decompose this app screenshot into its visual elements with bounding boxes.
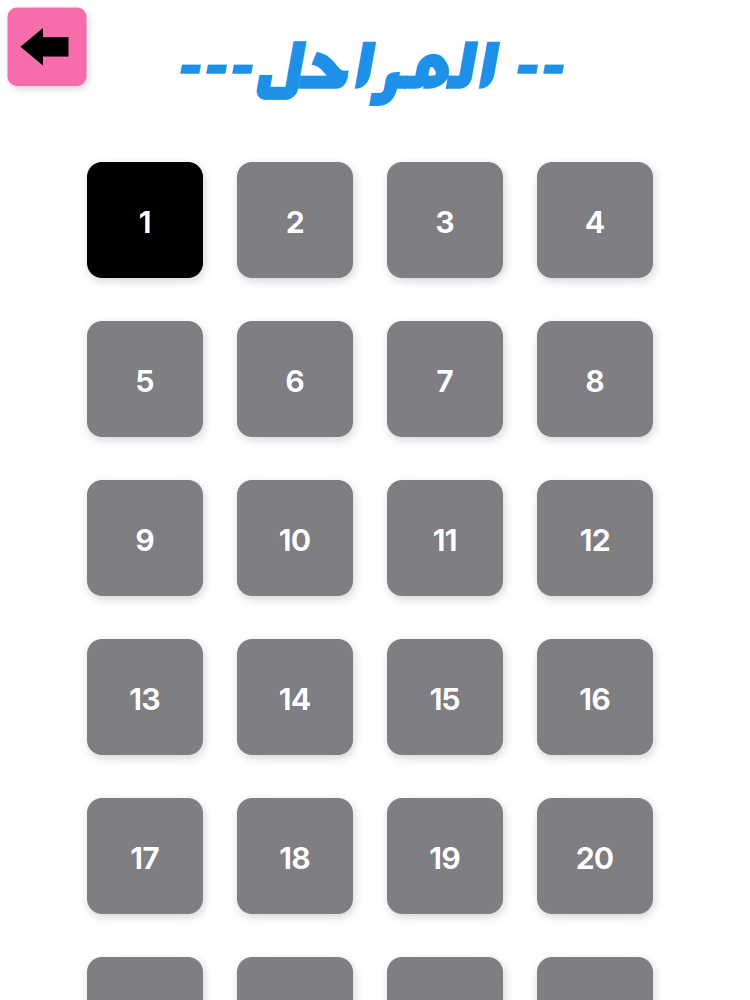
button[interactable]: Level 1 <box>87 162 203 278</box>
staticText: 14 <box>279 681 311 717</box>
staticText: 17 <box>130 840 159 876</box>
button[interactable]: Level 8 <box>537 321 653 437</box>
staticText: 9 <box>135 522 154 558</box>
button[interactable]: Level 3 <box>387 162 503 278</box>
staticText: 4 <box>585 204 605 240</box>
button[interactable]: Level 21 <box>87 957 203 1000</box>
button[interactable]: Level 4 <box>537 162 653 278</box>
staticText: 6 <box>285 363 304 399</box>
staticText: 1 <box>139 204 151 240</box>
button[interactable]: Level 14 <box>237 639 353 755</box>
button[interactable]: Level 10 <box>237 480 353 596</box>
staticText: 12 <box>580 522 610 558</box>
button[interactable]: Level 9 <box>87 480 203 596</box>
button[interactable]: Level 22 <box>237 957 353 1000</box>
staticText: 20 <box>576 840 614 876</box>
button[interactable]: Level 5 <box>87 321 203 437</box>
button[interactable]: Level 20 <box>537 798 653 914</box>
staticText: 18 <box>279 840 310 876</box>
staticText: 3 <box>435 204 454 240</box>
button[interactable]: Level 7 <box>387 321 503 437</box>
button[interactable]: Level 24 <box>537 957 653 1000</box>
staticText: 16 <box>579 681 610 717</box>
staticText: 13 <box>129 681 160 717</box>
button[interactable]: Level 17 <box>87 798 203 914</box>
button[interactable]: Level 15 <box>387 639 503 755</box>
staticText: 5 <box>136 363 154 399</box>
staticText: 2 <box>286 204 304 240</box>
button[interactable]: Level 2 <box>237 162 353 278</box>
button[interactable]: Back <box>7 7 86 86</box>
button[interactable]: Level 18 <box>237 798 353 914</box>
staticText: -- المراحل--- <box>186 17 575 115</box>
staticText: 8 <box>585 363 604 399</box>
staticText: 7 <box>436 363 453 399</box>
button[interactable]: Level 11 <box>387 480 503 596</box>
staticText: 19 <box>429 840 460 876</box>
staticText: 10 <box>279 522 311 558</box>
staticText: 11 <box>433 522 457 558</box>
button[interactable]: Level 6 <box>237 321 353 437</box>
button[interactable]: Level 12 <box>537 480 653 596</box>
staticText: 15 <box>430 681 460 717</box>
button[interactable]: Level 23 <box>387 957 503 1000</box>
button[interactable]: Level 13 <box>87 639 203 755</box>
button[interactable]: Level 16 <box>537 639 653 755</box>
button[interactable]: Level 19 <box>387 798 503 914</box>
